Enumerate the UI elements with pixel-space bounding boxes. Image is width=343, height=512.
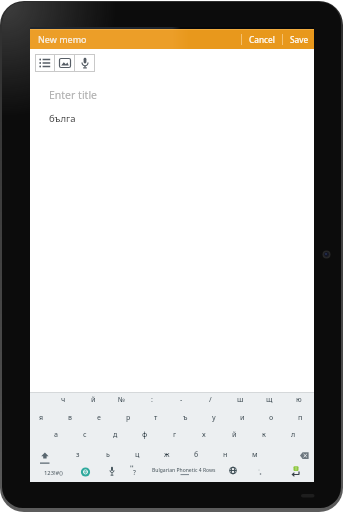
staticText: Cancel (249, 34, 275, 45)
staticText: Save (290, 34, 309, 45)
staticText: л (291, 430, 296, 440)
staticText: New memo (38, 33, 87, 45)
staticText: ч (61, 395, 66, 405)
staticText: щ (266, 395, 273, 405)
staticText: я (39, 413, 44, 423)
staticText: д (113, 430, 118, 440)
staticText: 123!#() (44, 469, 63, 477)
staticText: г (173, 430, 177, 440)
staticText: й (91, 395, 96, 405)
staticText: ь (106, 450, 110, 460)
staticText: Enter title (49, 88, 98, 102)
staticText: ъ (183, 413, 188, 423)
staticText: : (151, 395, 153, 405)
staticText: в (68, 413, 73, 423)
staticText: о (269, 413, 274, 423)
staticText: с (83, 430, 87, 440)
staticText: н (223, 450, 228, 460)
staticText: № (118, 395, 126, 405)
staticText: и (240, 413, 245, 423)
staticText: у (212, 413, 216, 423)
staticText: т (154, 413, 158, 423)
staticText: ж (164, 450, 170, 460)
staticText: - (180, 395, 183, 405)
staticText: ц (135, 450, 140, 460)
staticText: ю (296, 395, 302, 405)
staticText: к (262, 430, 266, 440)
staticText: п (298, 413, 303, 423)
staticText: м (252, 450, 258, 460)
staticText: бълга (49, 112, 76, 125)
staticText: е (97, 413, 101, 423)
staticText: а (54, 430, 58, 440)
staticText: х (202, 430, 206, 440)
staticText: / (209, 395, 212, 405)
staticText: ? (133, 468, 136, 477)
staticText: Bulgarian Phonetic 4 Rows (152, 467, 216, 474)
staticText: з (76, 450, 80, 460)
staticText: б (194, 450, 199, 460)
staticText: ш (237, 395, 244, 405)
staticText: й (232, 430, 237, 440)
staticText: ф (142, 430, 148, 440)
staticText: р (126, 413, 131, 423)
